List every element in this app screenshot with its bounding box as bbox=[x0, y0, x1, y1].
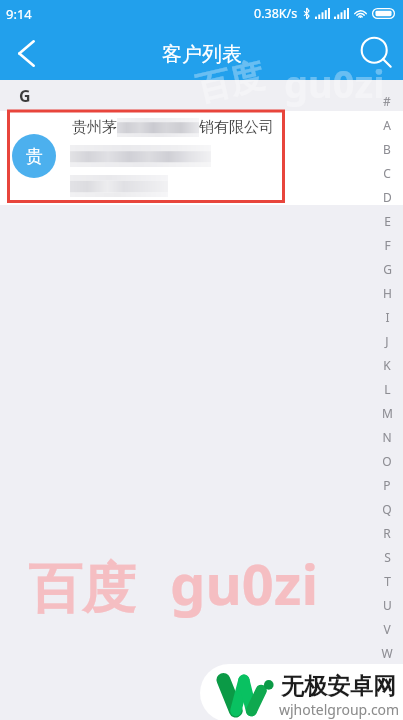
staticText: 0.38K/s bbox=[254, 5, 298, 22]
staticText: 贵州茅 bbox=[72, 118, 117, 137]
staticText: V bbox=[383, 621, 391, 637]
button[interactable]: U bbox=[376, 593, 398, 617]
button[interactable]: I bbox=[376, 305, 398, 329]
button[interactable]: N bbox=[376, 425, 398, 449]
button[interactable]: R bbox=[376, 521, 398, 545]
button[interactable]: J bbox=[376, 329, 398, 353]
staticText: F bbox=[384, 237, 391, 253]
staticText: L bbox=[384, 381, 391, 397]
button[interactable]: H bbox=[376, 281, 398, 305]
staticText: 百度 bbox=[192, 54, 268, 111]
staticText: E bbox=[384, 213, 391, 229]
staticText: U bbox=[383, 597, 392, 613]
button[interactable]: B bbox=[376, 137, 398, 161]
staticText: W bbox=[381, 645, 393, 661]
button[interactable]: Back bbox=[0, 29, 52, 77]
button[interactable]: 贵 bbox=[0, 111, 403, 205]
button[interactable]: L bbox=[376, 377, 398, 401]
button[interactable]: T bbox=[376, 569, 398, 593]
staticText: 无极安卓网 bbox=[281, 672, 396, 701]
staticText: B bbox=[383, 141, 391, 157]
button[interactable]: G bbox=[376, 257, 398, 281]
staticText: S bbox=[384, 549, 391, 565]
button[interactable]: Q bbox=[376, 497, 398, 521]
button[interactable]: C bbox=[376, 161, 398, 185]
button[interactable]: D bbox=[376, 185, 398, 209]
staticText: A bbox=[383, 117, 391, 133]
button[interactable]: F bbox=[376, 233, 398, 257]
staticText: Q bbox=[382, 501, 392, 517]
staticText: wjhotelgroup.com bbox=[279, 700, 400, 719]
staticText: J bbox=[385, 333, 389, 349]
button[interactable]: V bbox=[376, 617, 398, 641]
staticText: C bbox=[383, 165, 391, 181]
staticText: T bbox=[384, 573, 391, 589]
staticText: 贵 bbox=[26, 146, 43, 167]
button[interactable]: W bbox=[376, 641, 398, 665]
button[interactable]: M bbox=[376, 401, 398, 425]
staticText: 百度 bbox=[28, 555, 136, 623]
staticText: 销有限公司 bbox=[199, 118, 274, 137]
staticText: M bbox=[382, 405, 393, 421]
button[interactable]: E bbox=[376, 209, 398, 233]
staticText: gu0zi bbox=[284, 57, 385, 109]
staticText: P bbox=[383, 477, 391, 493]
button[interactable]: Search bbox=[350, 28, 402, 76]
staticText: G bbox=[383, 261, 392, 277]
button[interactable]: O bbox=[376, 449, 398, 473]
button[interactable]: P bbox=[376, 473, 398, 497]
button[interactable]: A bbox=[376, 113, 398, 137]
staticText: gu0zi bbox=[170, 545, 319, 621]
button[interactable]: X bbox=[376, 665, 398, 689]
staticText: # bbox=[383, 93, 391, 109]
staticText: R bbox=[383, 525, 391, 541]
staticText: H bbox=[383, 285, 392, 301]
button[interactable]: K bbox=[376, 353, 398, 377]
staticText: K bbox=[383, 357, 391, 373]
staticText: I bbox=[385, 309, 390, 325]
staticText: N bbox=[382, 429, 392, 445]
staticText: X bbox=[383, 669, 391, 685]
staticText: 客户列表 bbox=[162, 42, 242, 67]
button[interactable]: S bbox=[376, 545, 398, 569]
staticText: D bbox=[383, 189, 392, 205]
staticText: G bbox=[19, 85, 31, 107]
button[interactable]: # bbox=[376, 89, 398, 113]
staticText: O bbox=[382, 453, 392, 469]
staticText: 9:14 bbox=[6, 5, 32, 23]
